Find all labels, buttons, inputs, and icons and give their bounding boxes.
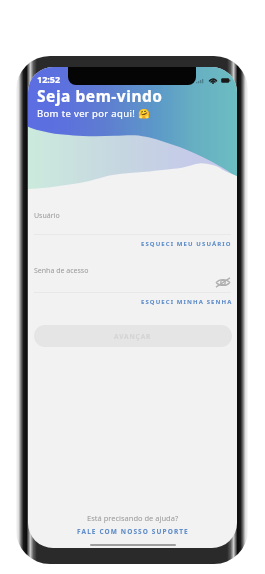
staticText: Está precisando de ajuda? <box>87 513 179 523</box>
button[interactable]: ESQUECI MINHA SENHA <box>141 298 233 306</box>
staticText: ESQUECI MEU USUÁRIO <box>141 240 232 248</box>
staticText: Seja bem-vindo <box>37 85 163 106</box>
staticText: AVANÇAR <box>114 332 152 341</box>
staticText: Bom te ver por aqui! 🤗 <box>37 107 151 120</box>
button[interactable]: ESQUECI MEU USUÁRIO <box>141 240 232 248</box>
button[interactable]: Mostrar senha <box>215 277 231 288</box>
staticText: Senha de acesso <box>34 266 89 276</box>
staticText: ESQUECI MINHA SENHA <box>141 298 233 306</box>
staticText: 12:52 <box>37 73 61 85</box>
staticText: Usuário <box>34 211 60 221</box>
staticText: FALE COM NOSSO SUPORTE <box>77 527 189 536</box>
button[interactable]: FALE COM NOSSO SUPORTE <box>77 527 189 536</box>
